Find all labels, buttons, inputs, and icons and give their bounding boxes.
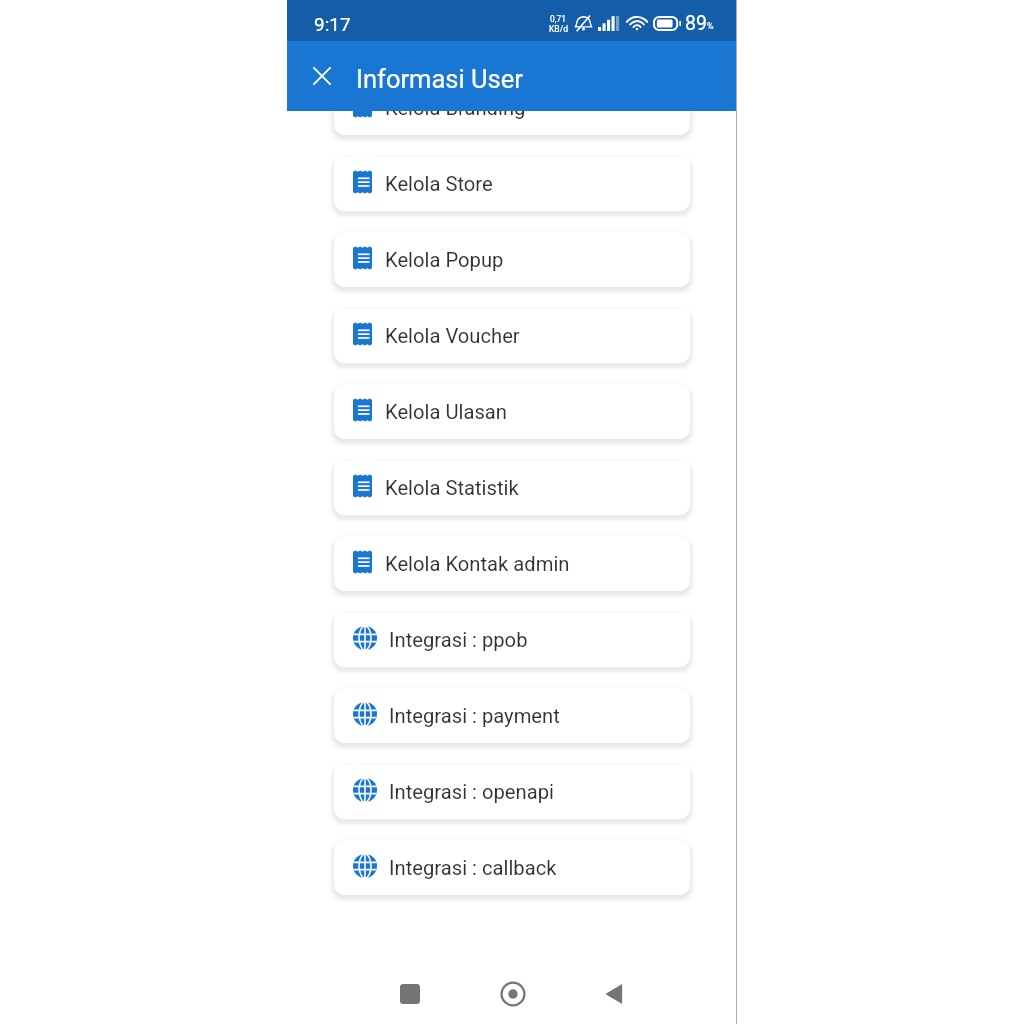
staticText: 89 bbox=[685, 12, 707, 35]
button[interactable]: Kelola Kontak admin bbox=[334, 536, 690, 591]
button[interactable]: Back bbox=[588, 968, 640, 1020]
button[interactable]: Kelola Branding bbox=[334, 80, 690, 135]
staticText: KB/d bbox=[549, 24, 568, 34]
button[interactable]: Kelola Popup bbox=[334, 232, 690, 287]
staticText: Kelola Statistik bbox=[385, 476, 519, 500]
staticText: Integrasi : callback bbox=[389, 856, 557, 880]
button[interactable]: Close bbox=[305, 59, 339, 93]
staticText: Kelola Store bbox=[385, 172, 493, 196]
staticText: Kelola Popup bbox=[385, 248, 504, 272]
button[interactable]: Home bbox=[487, 968, 539, 1020]
staticText: % bbox=[707, 21, 714, 32]
button[interactable]: Kelola Ulasan bbox=[334, 384, 690, 439]
staticText: Kelola Voucher bbox=[385, 324, 520, 348]
button[interactable]: Kelola Statistik bbox=[334, 460, 690, 515]
button[interactable]: Integrasi : ppob bbox=[334, 612, 690, 667]
button[interactable]: Recents bbox=[384, 968, 436, 1020]
staticText: Integrasi : openapi bbox=[389, 780, 554, 804]
button[interactable]: Kelola Store bbox=[334, 156, 690, 211]
staticText: Integrasi : ppob bbox=[389, 628, 528, 652]
staticText: 9:17 bbox=[314, 13, 351, 35]
button[interactable]: Kelola Voucher bbox=[334, 308, 690, 363]
staticText: Kelola Ulasan bbox=[385, 400, 507, 424]
staticText: Kelola Kontak admin bbox=[385, 552, 570, 576]
button[interactable]: Integrasi : payment bbox=[334, 688, 690, 743]
button[interactable]: Integrasi : openapi bbox=[334, 764, 690, 819]
staticText: Integrasi : payment bbox=[389, 704, 560, 728]
button[interactable]: Integrasi : callback bbox=[334, 840, 690, 895]
staticText: 0,71 bbox=[550, 14, 567, 24]
staticText: Informasi User bbox=[356, 64, 523, 94]
staticText: Kelola Branding bbox=[385, 96, 526, 120]
